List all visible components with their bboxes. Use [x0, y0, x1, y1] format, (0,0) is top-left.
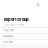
button[interactable]: Markdown	[0, 34, 48, 39]
staticText: Markdown	[3, 35, 13, 38]
staticText: Plain Text	[3, 29, 14, 32]
staticText: Rich Text	[3, 41, 13, 43]
staticText: Export Group	[4, 17, 29, 22]
staticText: Choose a format	[4, 23, 24, 26]
button[interactable]: Plain Text	[0, 28, 48, 33]
button[interactable]: Rich Text	[0, 39, 48, 45]
staticText: ✕	[37, 3, 39, 6]
button[interactable]: Close	[36, 2, 40, 7]
